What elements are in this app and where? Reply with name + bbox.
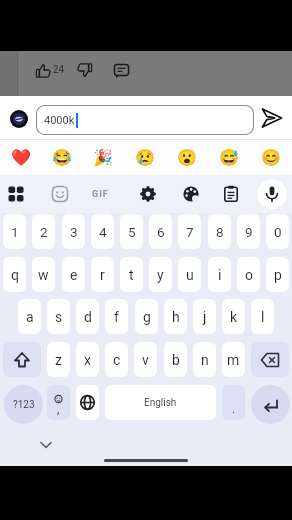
- staticText: z: [55, 352, 62, 368]
- staticText: f: [114, 309, 119, 325]
- button[interactable]: [113, 62, 130, 79]
- staticText: ❤️: [11, 148, 31, 167]
- button[interactable]: [182, 185, 200, 203]
- button[interactable]: [76, 385, 99, 420]
- staticText: English: [144, 397, 177, 409]
- staticText: o: [245, 267, 253, 283]
- button[interactable]: i: [208, 257, 231, 292]
- button[interactable]: [51, 185, 69, 203]
- button[interactable]: 😊: [250, 140, 292, 175]
- button[interactable]: q: [3, 257, 26, 292]
- button[interactable]: [251, 342, 289, 377]
- button[interactable]: ?123: [4, 385, 43, 424]
- staticText: 4000k: [44, 114, 75, 127]
- staticText: 😂: [52, 148, 72, 167]
- button[interactable]: b: [164, 342, 187, 377]
- button[interactable]: [251, 385, 290, 424]
- button[interactable]: m: [222, 342, 245, 377]
- button[interactable]: 4000k: [36, 105, 254, 135]
- button[interactable]: 😅: [208, 140, 250, 175]
- staticText: GIF: [92, 189, 109, 200]
- button[interactable]: a: [18, 299, 41, 334]
- button[interactable]: 9: [237, 214, 260, 249]
- button[interactable]: 🎉: [82, 140, 124, 175]
- button[interactable]: h: [164, 299, 187, 334]
- button[interactable]: ❤️: [0, 140, 41, 175]
- staticText: 7: [186, 224, 194, 240]
- button[interactable]: y: [149, 257, 172, 292]
- button[interactable]: [35, 62, 52, 79]
- button[interactable]: c: [105, 342, 128, 377]
- button[interactable]: r: [91, 257, 114, 292]
- staticText: 5: [128, 224, 136, 240]
- staticText: 🎉: [93, 148, 113, 167]
- staticText: x: [84, 352, 91, 368]
- staticText: .: [232, 402, 236, 416]
- button[interactable]: 1: [3, 214, 26, 249]
- staticText: 6: [157, 224, 165, 240]
- button[interactable]: English: [105, 385, 216, 420]
- staticText: v: [142, 352, 149, 368]
- button[interactable]: [139, 185, 157, 203]
- button[interactable]: z: [47, 342, 70, 377]
- button[interactable]: o: [237, 257, 260, 292]
- button[interactable]: 8: [208, 214, 231, 249]
- button[interactable]: GIF: [88, 185, 112, 203]
- staticText: q: [11, 267, 19, 283]
- staticText: d: [84, 309, 92, 325]
- button[interactable]: .: [222, 385, 245, 420]
- button[interactable]: t: [120, 257, 143, 292]
- button[interactable]: v: [134, 342, 157, 377]
- button[interactable]: u: [178, 257, 201, 292]
- button[interactable]: [222, 185, 240, 203]
- staticText: s: [55, 309, 63, 325]
- button[interactable]: g: [135, 299, 158, 334]
- button[interactable]: [257, 179, 287, 209]
- staticText: 😅: [219, 148, 239, 167]
- staticText: 😢: [135, 148, 155, 167]
- staticText: 😊: [261, 148, 281, 167]
- button[interactable]: ,: [47, 385, 70, 420]
- button[interactable]: k: [222, 299, 245, 334]
- button[interactable]: x: [76, 342, 99, 377]
- staticText: m: [227, 352, 240, 368]
- button[interactable]: 6: [149, 214, 172, 249]
- button[interactable]: s: [47, 299, 70, 334]
- staticText: u: [186, 267, 194, 283]
- button[interactable]: j: [193, 299, 216, 334]
- staticText: i: [218, 267, 222, 283]
- button[interactable]: [10, 110, 28, 128]
- button[interactable]: [260, 106, 284, 130]
- button[interactable]: f: [105, 299, 128, 334]
- button[interactable]: 2: [32, 214, 55, 249]
- button[interactable]: l: [251, 299, 274, 334]
- button[interactable]: d: [76, 299, 99, 334]
- button[interactable]: [36, 438, 56, 452]
- button[interactable]: 😢: [124, 140, 166, 175]
- button[interactable]: e: [62, 257, 85, 292]
- staticText: l: [261, 309, 265, 325]
- staticText: 8: [216, 224, 224, 240]
- button[interactable]: p: [266, 257, 289, 292]
- staticText: k: [230, 309, 238, 325]
- button[interactable]: [7, 185, 25, 203]
- staticText: n: [201, 352, 209, 368]
- staticText: ?123: [13, 399, 35, 411]
- staticText: 0: [274, 224, 282, 240]
- button[interactable]: 😮: [166, 140, 208, 175]
- button[interactable]: 7: [178, 214, 201, 249]
- button[interactable]: 😂: [41, 140, 82, 175]
- staticText: w: [38, 267, 49, 283]
- button[interactable]: n: [193, 342, 216, 377]
- button[interactable]: w: [32, 257, 55, 292]
- button[interactable]: [3, 342, 41, 377]
- button[interactable]: 4: [91, 214, 114, 249]
- button[interactable]: 3: [62, 214, 85, 249]
- staticText: ,: [57, 402, 60, 416]
- staticText: 3: [70, 224, 78, 240]
- button[interactable]: [76, 62, 93, 79]
- button[interactable]: 5: [120, 214, 143, 249]
- staticText: h: [172, 309, 180, 325]
- button[interactable]: 0: [266, 214, 289, 249]
- staticText: p: [274, 267, 282, 283]
